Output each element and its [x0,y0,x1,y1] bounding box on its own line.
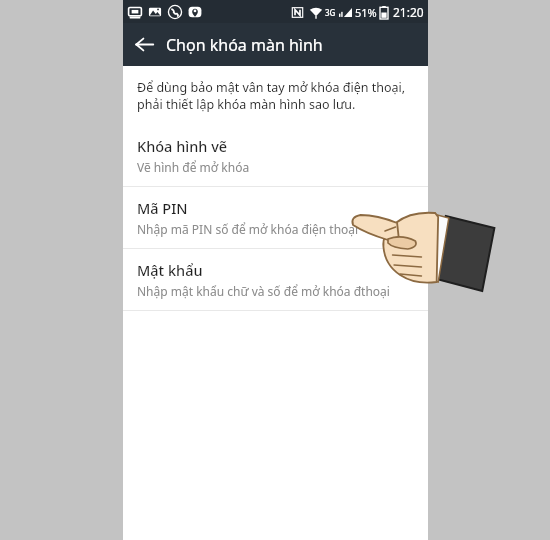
button[interactable]: Mật khẩu [123,249,428,310]
staticText: 51% [355,5,377,20]
button[interactable]: Khóa hình vẽ [123,125,428,186]
button[interactable]: Back [123,23,166,66]
staticText: Chọn khóa màn hình [166,34,323,56]
staticText: Vẽ hình để mở khóa [137,159,250,175]
staticText: phải thiết lập khóa màn hình sao lưu. [137,96,356,113]
staticText: 21:20 [393,4,424,20]
button[interactable]: Mã PIN [123,187,428,248]
staticText: Nhập mã PIN số để mở khóa điện thoại [137,221,359,237]
staticText: Mật khẩu [137,260,203,280]
staticText: Để dùng bảo mật vân tay mở khóa điện tho… [137,79,406,96]
staticText: 3G [325,7,336,18]
staticText: Khóa hình vẽ [137,136,228,156]
staticText: Nhập mật khẩu chữ và số để mở khóa đthoạ… [137,283,390,299]
staticText: Mã PIN [137,198,188,218]
